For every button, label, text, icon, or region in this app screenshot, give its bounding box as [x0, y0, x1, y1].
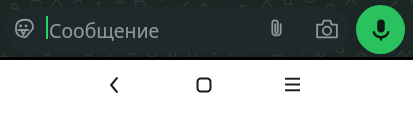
button[interactable]: Attach [262, 13, 290, 41]
button[interactable]: Home [183, 64, 224, 105]
staticText: Сообщение [49, 17, 160, 44]
button[interactable]: Emoji [10, 14, 39, 43]
button[interactable]: Emoji [6, 7, 349, 53]
button[interactable]: Voice message [356, 5, 405, 54]
button[interactable]: Recent apps [272, 64, 313, 105]
button[interactable]: Back [93, 64, 134, 105]
button[interactable]: Camera [313, 15, 341, 43]
